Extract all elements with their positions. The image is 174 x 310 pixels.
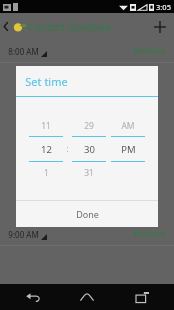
staticText: 31: [84, 167, 94, 179]
button[interactable]: Home: [65, 284, 109, 310]
button[interactable]: 9:00 AM: [0, 223, 174, 246]
staticText: 11: [41, 120, 51, 132]
button[interactable]: 29: [72, 115, 106, 183]
staticText: 9:00 AM: [8, 229, 39, 240]
button[interactable]: Done: [16, 201, 158, 227]
button[interactable]: Back: [11, 284, 55, 310]
staticText: 8:00 AM: [8, 46, 39, 57]
button[interactable]: Navigate up: [0, 19, 29, 34]
staticText: 1: [44, 167, 49, 179]
button[interactable]: AM: [111, 115, 145, 183]
button[interactable]: Recent apps: [120, 284, 164, 310]
staticText: 3:05: [156, 2, 171, 12]
staticText: 12: [41, 143, 52, 156]
staticText: 29: [84, 120, 94, 132]
staticText: Content Schedule: [28, 20, 111, 34]
button[interactable]: 8:00 AM: [0, 40, 174, 63]
staticText: Remove: [133, 228, 166, 240]
staticText: :: [66, 143, 69, 154]
staticText: 30: [84, 143, 95, 156]
staticText: Set time: [25, 74, 68, 89]
staticText: PM: [121, 143, 136, 156]
staticText: Remove: [133, 45, 166, 57]
staticText: AM: [121, 120, 135, 132]
button[interactable]: 11: [29, 115, 63, 183]
button[interactable]: Add: [146, 13, 174, 40]
staticText: Done: [76, 208, 99, 220]
